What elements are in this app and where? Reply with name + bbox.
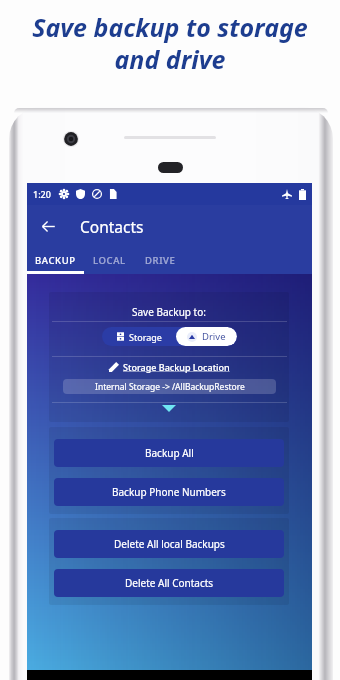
staticText: Storage Backup Location bbox=[123, 361, 230, 373]
button[interactable]: DRIVE bbox=[135, 247, 186, 274]
button[interactable]: Drive bbox=[176, 327, 237, 346]
staticText: Delete All Contacts bbox=[125, 576, 214, 590]
button[interactable]: Delete All local Backups bbox=[54, 530, 284, 558]
staticText: LOCAL bbox=[93, 254, 126, 267]
button[interactable]: Delete All Contacts bbox=[54, 569, 284, 597]
button[interactable]: Backup Phone Numbers bbox=[54, 478, 284, 506]
staticText: Backup Phone Numbers bbox=[112, 485, 226, 499]
button[interactable]: Internal Storage -> /AllBackupRestore bbox=[63, 379, 276, 394]
button[interactable]: Storage bbox=[102, 327, 176, 346]
staticText: Delete All local Backups bbox=[114, 537, 225, 551]
staticText: Drive bbox=[202, 330, 226, 343]
staticText: Storage bbox=[129, 331, 162, 343]
button[interactable]: Back bbox=[32, 210, 65, 243]
staticText: Internal Storage -> /AllBackupRestore bbox=[95, 381, 245, 393]
staticText: Backup All bbox=[145, 446, 194, 460]
button[interactable]: Storage Backup Location bbox=[49, 359, 289, 375]
button[interactable]: BACKUP bbox=[27, 247, 84, 274]
staticText: Contacts bbox=[80, 216, 144, 237]
button[interactable]: LOCAL bbox=[84, 247, 135, 274]
staticText: Save Backup to: bbox=[132, 305, 206, 319]
button[interactable]: Backup All bbox=[54, 439, 284, 467]
staticText: DRIVE bbox=[145, 254, 176, 267]
staticText: Save backup to storage and drive bbox=[32, 10, 308, 76]
staticText: BACKUP bbox=[35, 254, 76, 267]
staticText: 1:20 bbox=[33, 188, 51, 200]
